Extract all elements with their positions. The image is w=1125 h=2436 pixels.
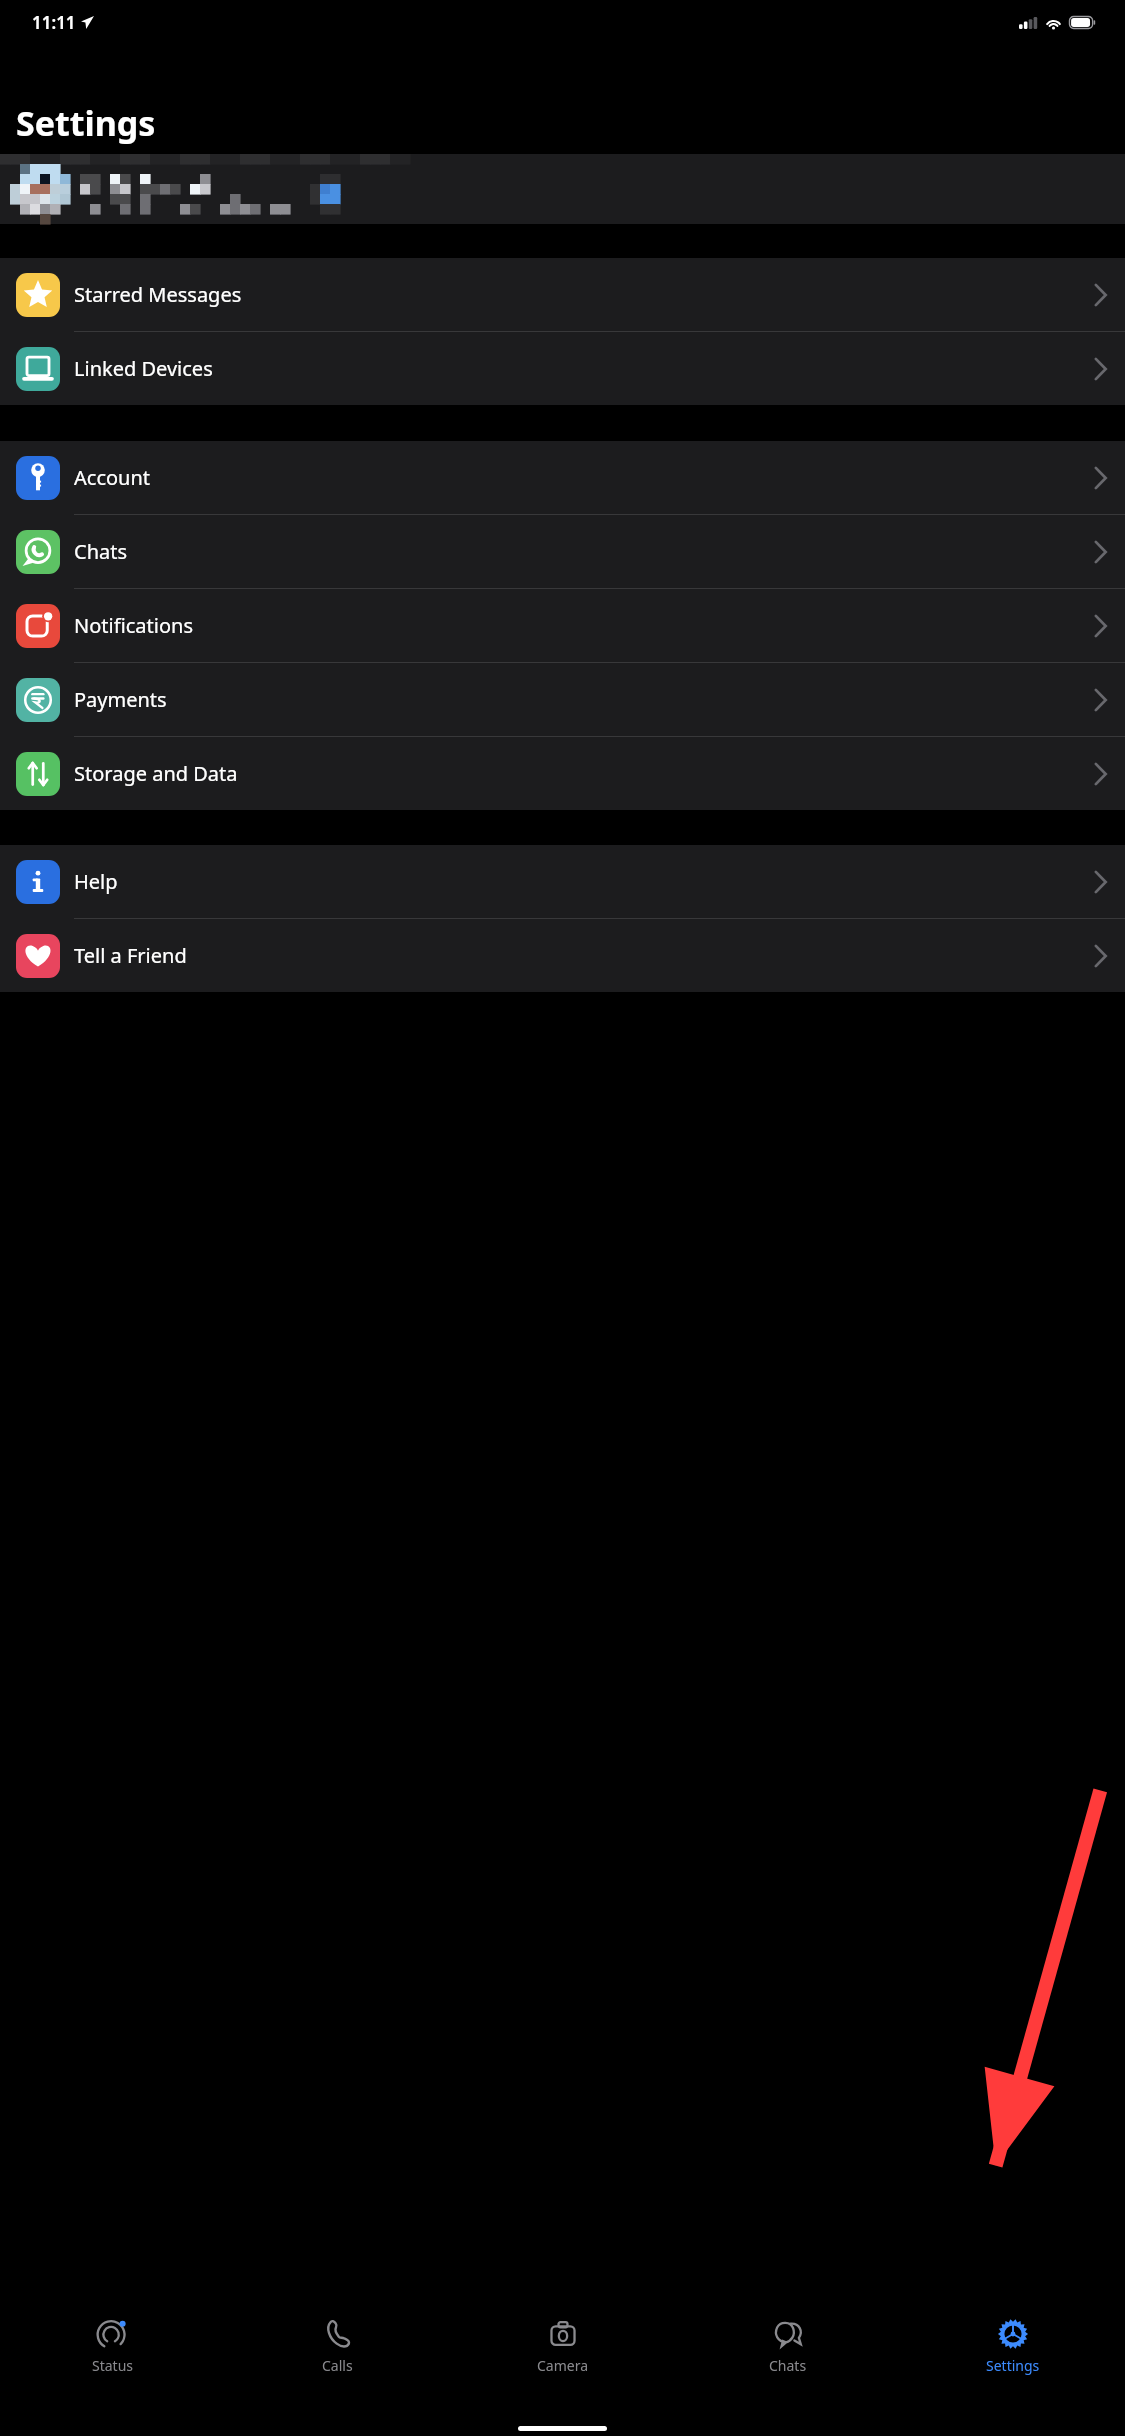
button[interactable]: Storage and Data [0,737,1125,810]
staticText: Settings [986,2356,1040,2375]
button[interactable]: Chats [675,2298,900,2394]
staticText: Tell a Friend [74,942,187,969]
staticText: Payments [74,686,167,713]
staticText: Help [74,868,118,895]
button[interactable]: Linked Devices [0,332,1125,405]
staticText: Starred Messages [74,281,242,308]
button[interactable]: Calls [225,2298,450,2394]
button[interactable]: Tell a Friend [0,919,1125,992]
staticText: Camera [537,2356,589,2375]
staticText: Calls [322,2356,353,2375]
button[interactable]: Help [0,845,1125,918]
staticText: Storage and Data [74,760,238,787]
staticText: 11:11 [32,11,76,34]
button[interactable]: Payments [0,663,1125,736]
button[interactable]: Account [0,441,1125,514]
staticText: Account [74,464,151,491]
button[interactable]: Chats [0,515,1125,588]
staticText: Status [92,2356,134,2375]
staticText: Settings [16,100,156,146]
staticText: Chats [769,2356,807,2375]
staticText: Notifications [74,612,193,639]
button[interactable]: Starred Messages [0,258,1125,331]
staticText: Linked Devices [74,355,213,382]
button[interactable]: Camera [450,2298,675,2394]
staticText: Chats [74,538,128,565]
button[interactable]: Profile [0,154,1125,224]
button[interactable]: Status [0,2298,225,2394]
button[interactable]: Settings [900,2298,1125,2394]
button[interactable]: Notifications [0,589,1125,662]
